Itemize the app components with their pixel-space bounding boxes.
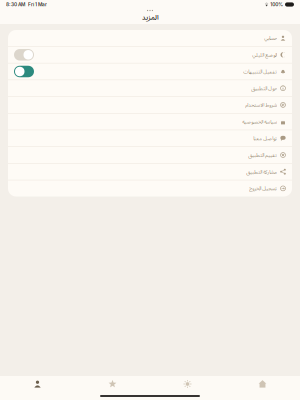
- staticText: تفعيل التنبيهات: [243, 68, 277, 75]
- button[interactable]: تواصل معنا: [8, 130, 292, 146]
- button[interactable]: سياسة الخصوصية: [8, 113, 292, 130]
- button[interactable]: المزيد: [0, 376, 75, 392]
- staticText: المزيد: [141, 12, 158, 22]
- staticText: 100%: [270, 2, 283, 7]
- staticText: شروط الاستخدام: [245, 101, 277, 108]
- staticText: حول التطبيق: [251, 85, 277, 92]
- staticText: تسجيل الخروج: [249, 185, 277, 192]
- button[interactable]: تسجيل الخروج: [8, 180, 292, 196]
- button[interactable]: شروط الاستخدام: [8, 97, 292, 113]
- button[interactable]: الأذكار: [150, 376, 225, 392]
- button[interactable]: الرئيسية: [225, 376, 300, 392]
- staticText: حسابي: [264, 35, 277, 41]
- button[interactable]: المفضلة: [75, 376, 150, 392]
- staticText: مشاركة التطبيق: [246, 168, 277, 175]
- button[interactable]: الوضع الليلي: [8, 47, 292, 63]
- button[interactable]: مشاركة التطبيق: [8, 164, 292, 180]
- staticText: تواصل معنا: [253, 135, 277, 142]
- staticText: الوضع الليلي: [252, 51, 277, 58]
- button[interactable]: تقييم التطبيق: [8, 147, 292, 163]
- button[interactable]: حول التطبيق: [8, 80, 292, 96]
- button[interactable]: تفعيل التنبيهات: [8, 63, 292, 80]
- staticText: سياسة الخصوصية: [242, 118, 277, 125]
- staticText: 8:30 AM Fri 1 Mar: [6, 2, 47, 7]
- button[interactable]: حسابي: [8, 30, 292, 46]
- staticText: تقييم التطبيق: [248, 151, 277, 158]
